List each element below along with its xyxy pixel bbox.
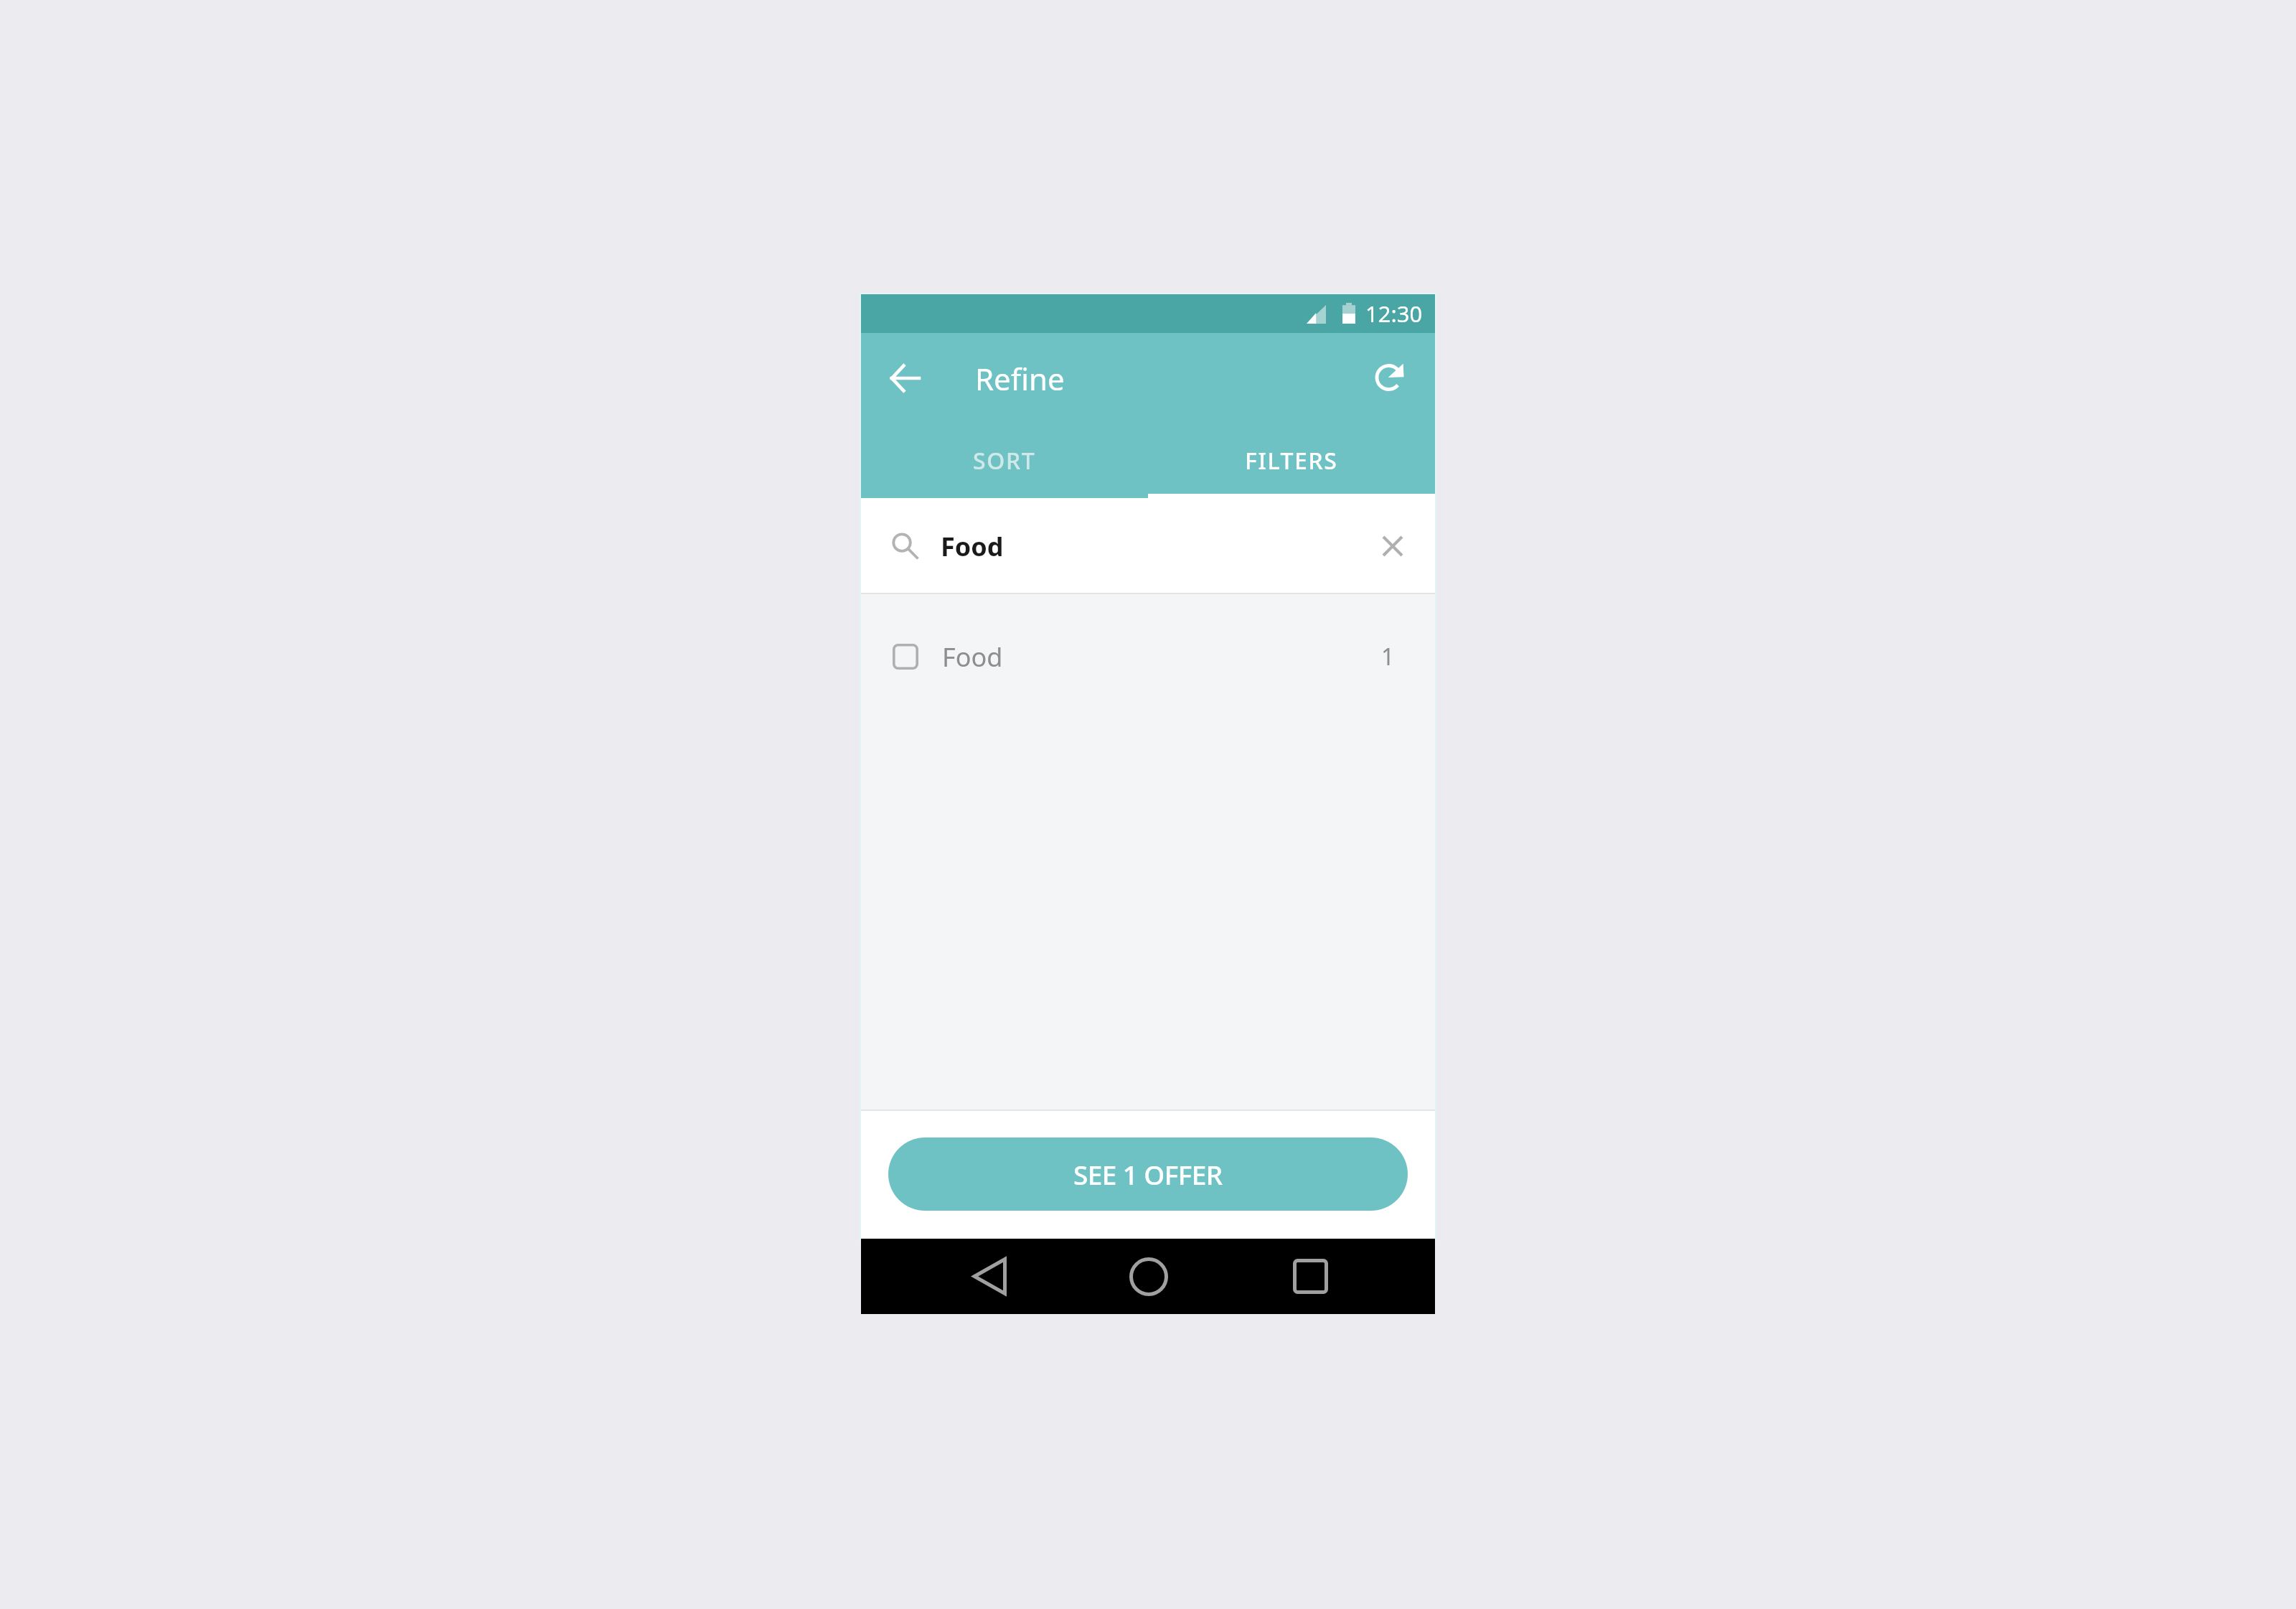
button[interactable]: SEE 1 OFFER [888, 1137, 1408, 1211]
staticText: Refine [975, 358, 1065, 399]
button[interactable]: FILTERS [1148, 423, 1435, 498]
button[interactable]: Food [861, 617, 1435, 696]
staticText: SEE 1 OFFER [1073, 1156, 1223, 1192]
button[interactable]: Back [874, 347, 936, 409]
staticText: 1 [1381, 641, 1395, 672]
staticText: 12:30 [1365, 299, 1423, 329]
staticText: SORT [973, 445, 1036, 477]
staticText: FILTERS [1245, 445, 1338, 477]
button[interactable]: SORT [861, 423, 1148, 498]
button[interactable]: Refresh [1360, 347, 1422, 409]
button[interactable]: Clear search [1369, 522, 1416, 570]
button[interactable]: Recents [1273, 1239, 1348, 1314]
button[interactable]: Back [948, 1239, 1023, 1314]
button[interactable]: Home [1111, 1239, 1186, 1314]
staticText: Food [942, 639, 1003, 675]
staticText: Food [941, 529, 1004, 564]
